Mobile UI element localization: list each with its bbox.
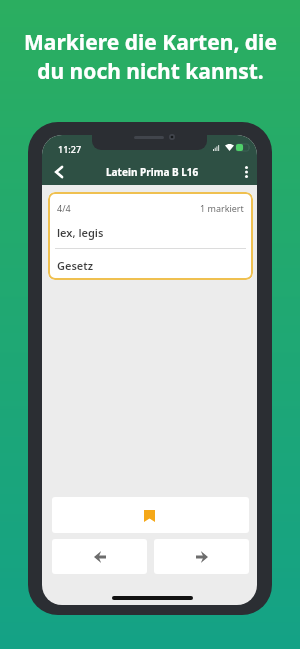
staticText: 1 markiert <box>200 202 244 214</box>
button[interactable]: More options <box>235 158 257 185</box>
staticText: lex, legis <box>57 225 104 240</box>
button[interactable]: Next card <box>154 539 249 574</box>
staticText: Gesetz <box>57 258 94 273</box>
button[interactable]: Previous card <box>52 539 147 574</box>
staticText: Markiere die Karten, die <box>24 28 277 57</box>
staticText: 4/4 <box>57 202 71 214</box>
button[interactable]: 4/4 <box>48 192 253 280</box>
button[interactable]: Back <box>48 158 69 185</box>
staticText: du noch nicht kannst. <box>37 57 264 86</box>
staticText: 11:27 <box>58 143 82 155</box>
staticText: Latein Prima B L16 <box>106 165 199 179</box>
button[interactable]: Mark card <box>52 497 249 533</box>
